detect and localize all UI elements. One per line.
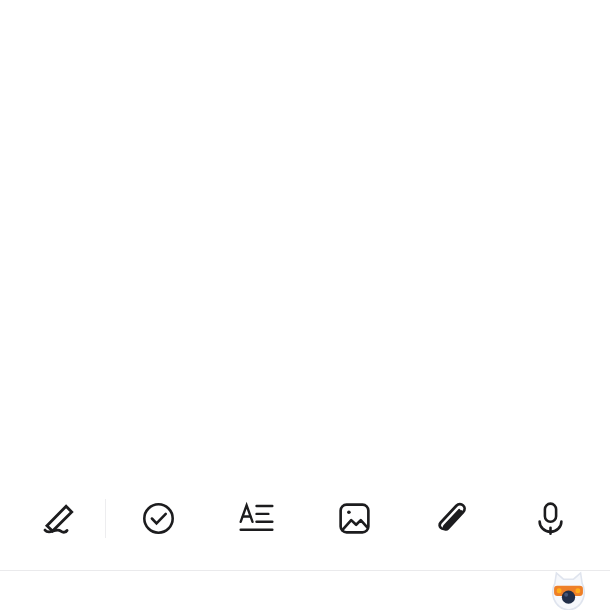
button[interactable]: Attach file bbox=[427, 494, 475, 542]
button[interactable]: Draw bbox=[35, 494, 83, 542]
button[interactable]: Assistant bbox=[549, 571, 588, 610]
button[interactable]: Tasks bbox=[134, 494, 182, 542]
button[interactable]: Insert image bbox=[330, 494, 378, 542]
button[interactable]: Voice input bbox=[526, 494, 574, 542]
button[interactable]: Format text bbox=[232, 494, 280, 542]
